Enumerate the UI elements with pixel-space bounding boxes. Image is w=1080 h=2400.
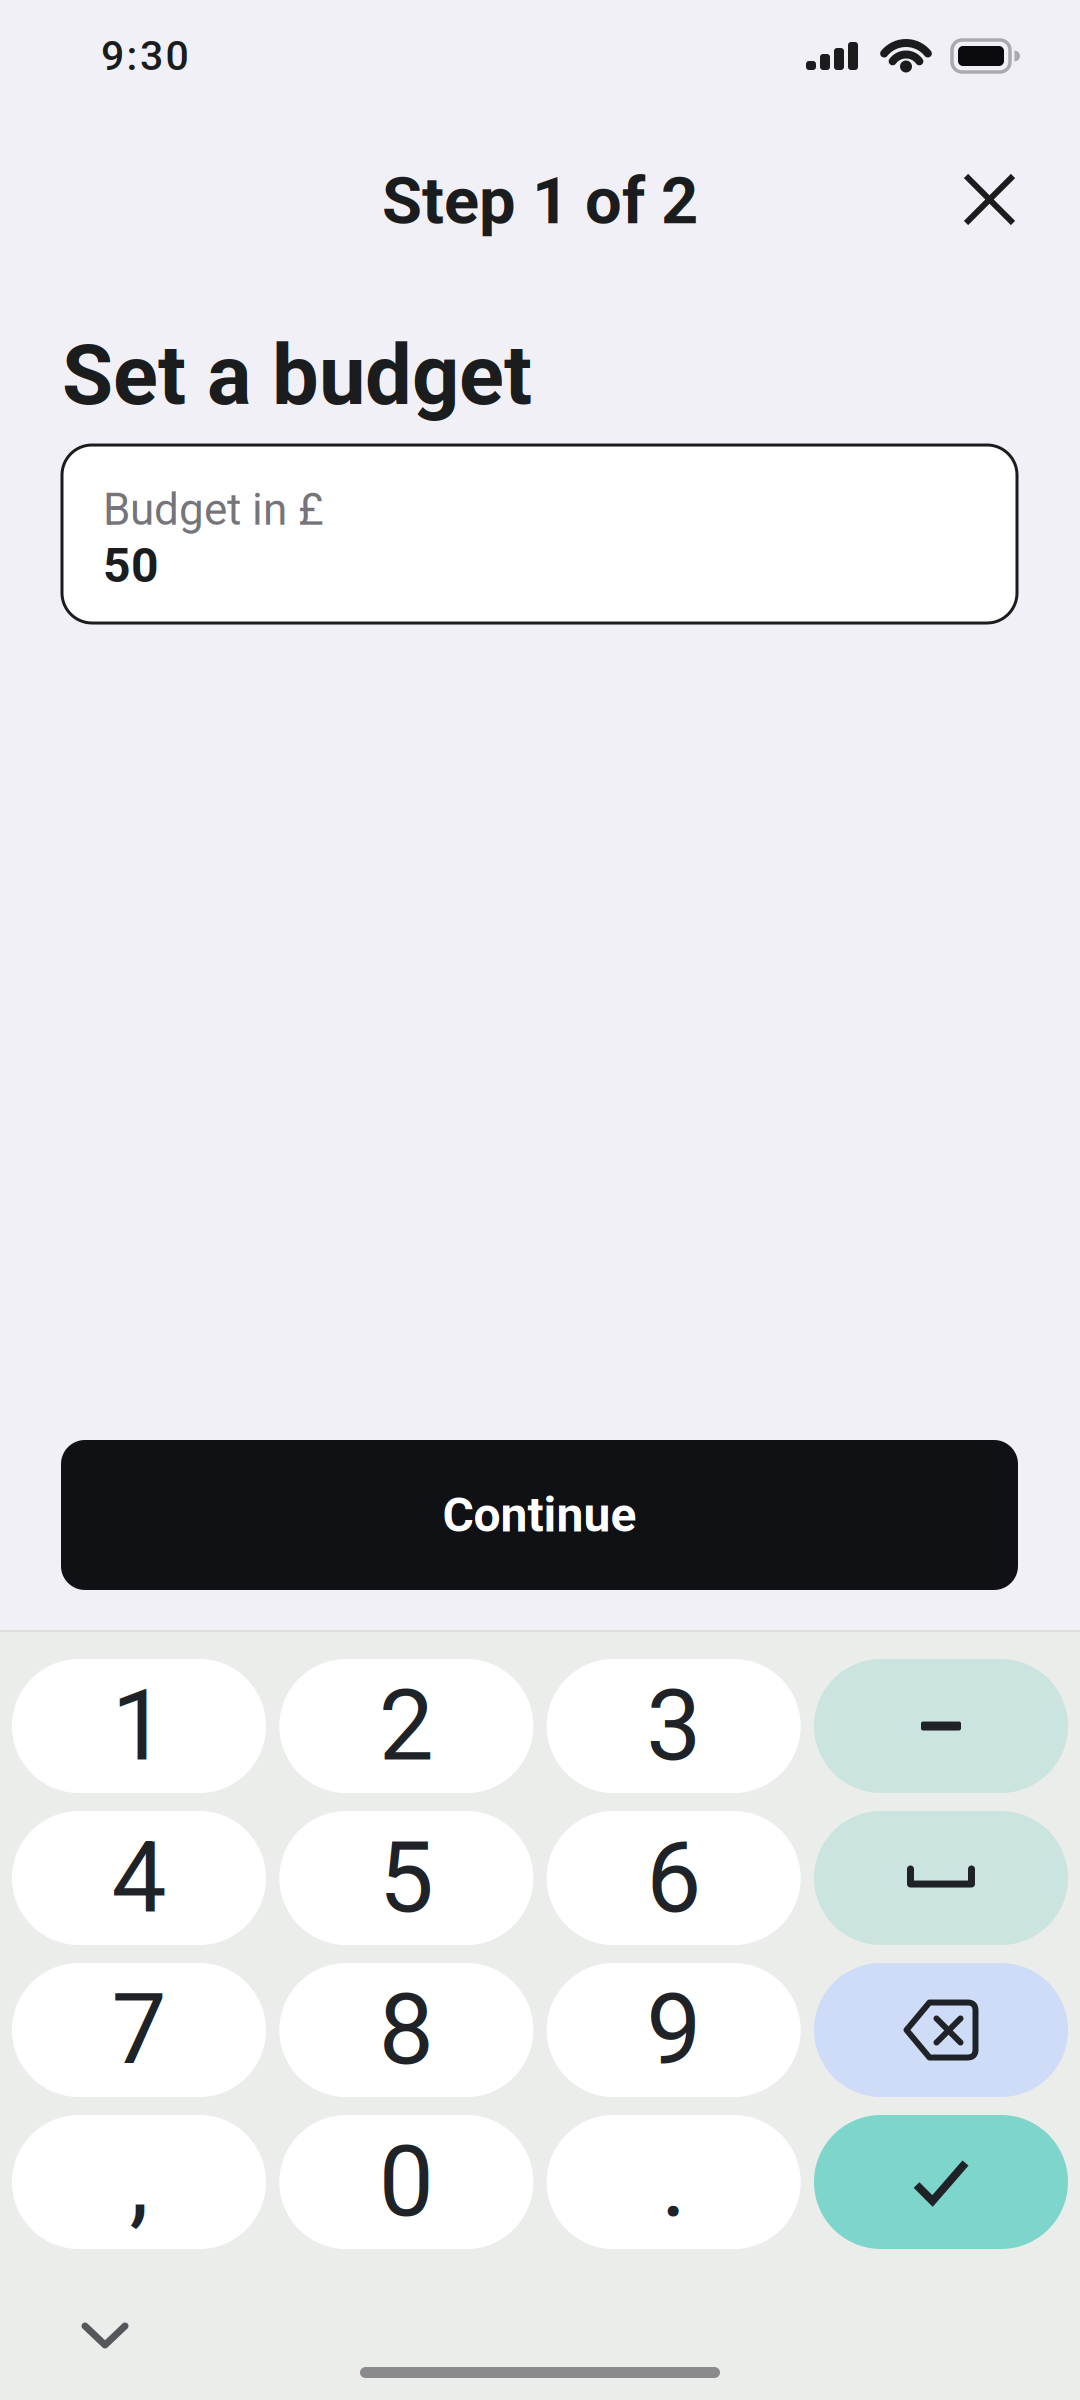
staticText: Step 1 of 2 — [382, 163, 698, 239]
button[interactable]: Backspace — [814, 1963, 1068, 2097]
staticText: 2 — [379, 1669, 434, 1783]
staticText: . — [661, 2125, 687, 2239]
button[interactable]: 0 — [279, 2115, 533, 2249]
staticText: , — [129, 2125, 148, 2239]
staticText: Continue — [442, 1487, 636, 1543]
staticText: 0 — [379, 2125, 434, 2239]
staticText: Set a budget — [62, 327, 532, 424]
button[interactable]: Close — [940, 150, 1040, 250]
button[interactable]: Continue — [61, 1440, 1018, 1590]
button[interactable]: 5 — [279, 1811, 533, 1945]
staticText: 9 — [646, 1973, 701, 2087]
button[interactable]: 7 — [12, 1963, 266, 2097]
button[interactable]: . — [547, 2115, 801, 2249]
button[interactable]: Hide keyboard — [60, 2288, 150, 2378]
staticText: 3 — [646, 1669, 701, 1783]
button[interactable]: Space — [814, 1811, 1068, 1945]
staticText: 6 — [646, 1821, 701, 1935]
staticText: Budget in £ — [103, 484, 324, 536]
button[interactable]: Done — [814, 2115, 1068, 2249]
button[interactable]: 8 — [279, 1963, 533, 2097]
button[interactable]: 3 — [547, 1659, 801, 1793]
button[interactable]: 9 — [547, 1963, 801, 2097]
button[interactable]: Budget in £ — [62, 445, 1017, 623]
staticText: 1 — [111, 1669, 166, 1783]
staticText: 50 — [103, 538, 159, 594]
staticText: 5 — [379, 1821, 434, 1935]
staticText: 9:30 — [101, 32, 188, 80]
button[interactable]: , — [12, 2115, 266, 2249]
staticText: 4 — [111, 1821, 166, 1935]
button[interactable]: 1 — [12, 1659, 266, 1793]
button[interactable]: 2 — [279, 1659, 533, 1793]
button[interactable]: 6 — [547, 1811, 801, 1945]
button[interactable]: 4 — [12, 1811, 266, 1945]
staticText: 7 — [111, 1973, 166, 2087]
button[interactable]: Minus — [814, 1659, 1068, 1793]
staticText: 8 — [379, 1973, 434, 2087]
